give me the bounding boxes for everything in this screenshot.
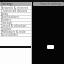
button[interactable]: Network & internet xyxy=(0,6,31,9)
staticText: Settings xyxy=(1,2,13,6)
button[interactable]: Display xyxy=(0,27,31,30)
button[interactable]: Connected devices xyxy=(0,9,31,12)
staticText: Search settings xyxy=(40,2,62,6)
button[interactable]: Apps xyxy=(0,12,31,15)
staticText: Network & internet xyxy=(1,6,29,9)
button[interactable]: Sound & vibration xyxy=(0,24,31,27)
staticText: Battery xyxy=(1,18,12,21)
button[interactable]: Battery xyxy=(0,18,31,21)
button[interactable]: Notifications xyxy=(0,15,31,18)
button[interactable]: Storage xyxy=(0,21,31,24)
staticText: Storage xyxy=(1,21,12,24)
staticText: Notifications xyxy=(1,15,19,18)
button[interactable]: Accessibility xyxy=(0,33,31,36)
staticText: Connected devices xyxy=(1,9,28,12)
staticText: Wallpaper & style xyxy=(1,30,26,33)
staticText: Accessibility xyxy=(1,33,18,36)
staticText: Sound & vibration xyxy=(1,24,27,27)
button[interactable]: Search settings xyxy=(33,2,64,6)
staticText: Apps xyxy=(1,12,9,15)
button[interactable]: Wallpaper & style xyxy=(0,30,31,33)
button[interactable]: Add xyxy=(47,45,54,49)
staticText: Display xyxy=(1,27,12,30)
